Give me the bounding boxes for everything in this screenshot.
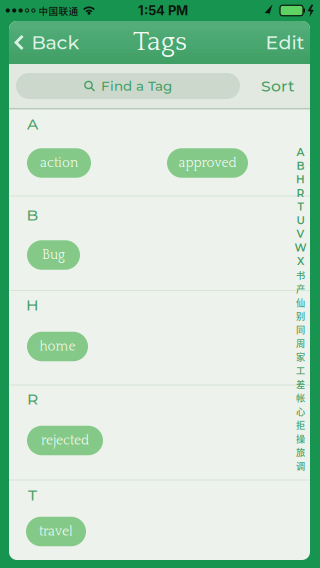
staticText: X xyxy=(297,255,304,268)
staticText: Back xyxy=(31,31,79,54)
staticText: 拒 xyxy=(296,418,305,431)
staticText: R xyxy=(296,187,304,199)
button[interactable]: Find a Tag xyxy=(16,73,240,99)
staticText: 帐 xyxy=(296,391,305,404)
staticText: B xyxy=(26,206,38,224)
staticText: A xyxy=(296,146,304,159)
staticText: 操 xyxy=(296,432,305,445)
staticText: U xyxy=(296,214,304,227)
staticText: 书 xyxy=(296,268,305,281)
staticText: T xyxy=(28,486,37,504)
staticText: 仙 xyxy=(296,295,305,309)
staticText: R xyxy=(27,390,38,408)
button[interactable]: travel xyxy=(26,517,86,546)
staticText: Tags xyxy=(133,27,187,57)
button[interactable]: Edit xyxy=(260,26,310,58)
staticText: 旅 xyxy=(296,445,305,459)
staticText: 家 xyxy=(296,350,305,363)
staticText: W xyxy=(294,241,306,254)
staticText: Edit xyxy=(265,31,304,54)
staticText: 同 xyxy=(296,323,305,336)
staticText: 别 xyxy=(296,309,305,322)
button[interactable]: rejected xyxy=(27,426,103,455)
button[interactable]: Back xyxy=(10,26,84,58)
staticText: V xyxy=(296,227,304,240)
staticText: 工 xyxy=(296,364,305,377)
staticText: 调 xyxy=(296,459,305,472)
button[interactable]: approved xyxy=(167,148,248,178)
staticText: 1:54 PM xyxy=(138,3,188,18)
staticText: 周 xyxy=(296,336,305,350)
button[interactable]: Bug xyxy=(27,240,80,270)
staticText: action xyxy=(40,155,78,171)
staticText: Bug xyxy=(42,247,65,263)
staticText: A xyxy=(27,115,38,133)
staticText: Sort xyxy=(261,76,294,95)
staticText: T xyxy=(297,200,303,213)
staticText: B xyxy=(296,159,304,172)
button[interactable]: Sort xyxy=(250,71,304,101)
button[interactable]: home xyxy=(27,332,88,361)
staticText: approved xyxy=(178,155,236,171)
staticText: 中国联通 xyxy=(38,3,78,17)
staticText: 心 xyxy=(296,404,305,418)
staticText: travel xyxy=(39,524,73,539)
staticText: 差 xyxy=(296,377,305,390)
staticText: H xyxy=(26,296,39,314)
button[interactable]: action xyxy=(27,148,91,178)
staticText: H xyxy=(296,173,305,186)
staticText: 产 xyxy=(296,282,305,295)
staticText: home xyxy=(39,339,75,354)
staticText: Find a Tag xyxy=(101,78,172,94)
staticText: rejected xyxy=(41,433,89,448)
